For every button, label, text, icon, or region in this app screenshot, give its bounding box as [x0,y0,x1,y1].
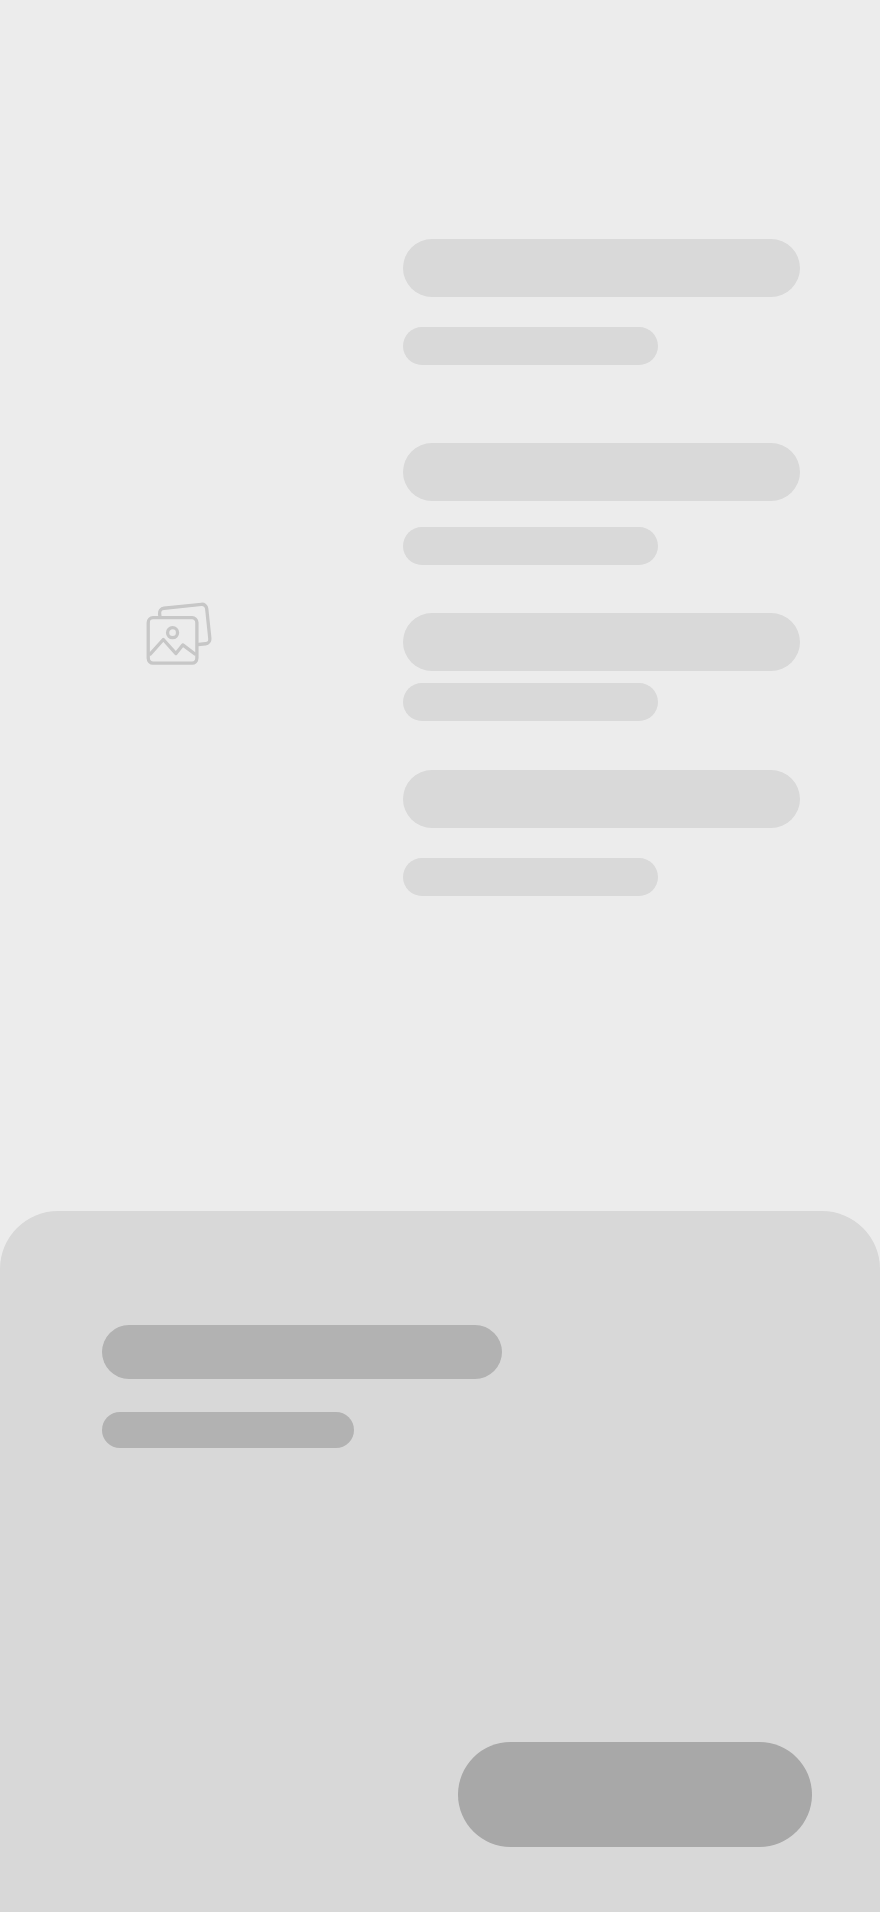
other: Image placeholder [146,602,210,666]
button[interactable]: Primary action [458,1742,812,1847]
